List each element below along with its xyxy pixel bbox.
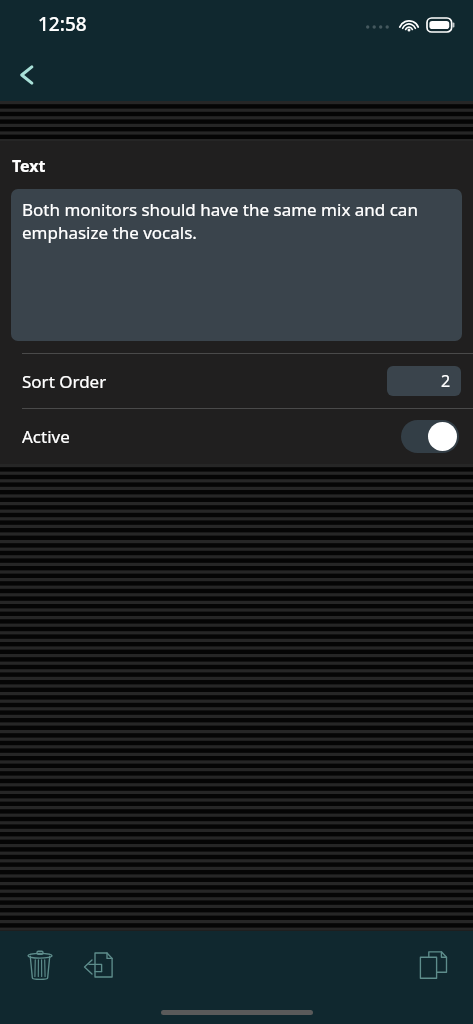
staticText: 2 bbox=[441, 370, 451, 392]
button[interactable]: Active bbox=[0, 409, 473, 464]
staticText: Text bbox=[12, 155, 46, 177]
button[interactable]: Active toggle bbox=[401, 420, 459, 453]
button[interactable]: Sort Order bbox=[0, 354, 473, 408]
staticText: 12:58 bbox=[38, 11, 87, 37]
button[interactable]: Revert bbox=[72, 939, 124, 991]
staticText: Both monitors should have the same mix a… bbox=[22, 198, 451, 244]
button[interactable]: Duplicate bbox=[407, 939, 459, 991]
button[interactable]: Back bbox=[4, 52, 50, 98]
staticText: Active bbox=[22, 425, 70, 448]
button[interactable]: Delete bbox=[14, 939, 66, 991]
staticText: Sort Order bbox=[22, 370, 107, 393]
button[interactable]: Both monitors should have the same mix a… bbox=[11, 189, 462, 341]
